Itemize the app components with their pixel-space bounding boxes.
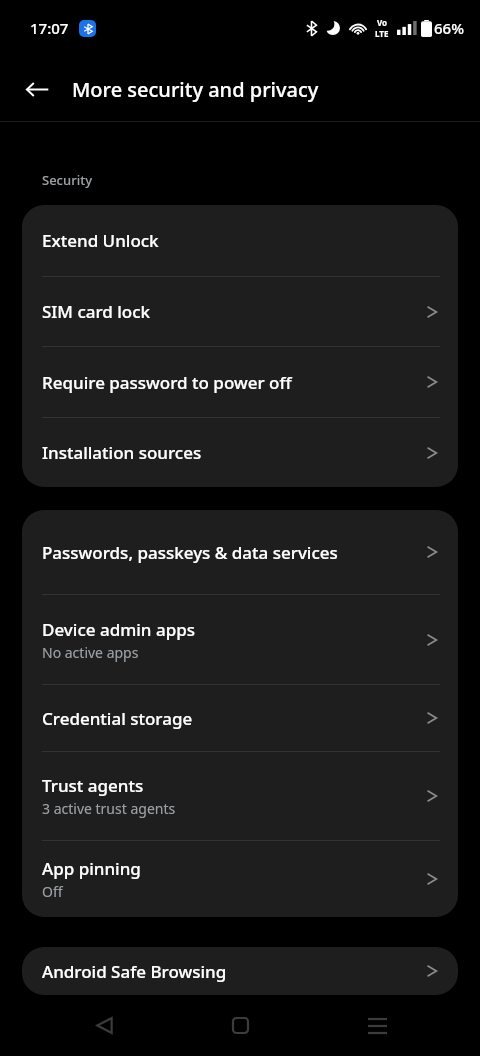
staticText: App pinning xyxy=(42,857,141,880)
staticText: Android Safe Browsing xyxy=(42,960,227,983)
staticText: Require password to power off xyxy=(42,371,292,394)
staticText: Extend Unlock xyxy=(42,229,159,252)
button[interactable]: Trust agents xyxy=(22,752,458,840)
staticText: Device admin apps xyxy=(42,618,196,641)
button[interactable]: Require password to power off xyxy=(22,347,458,417)
staticText: Vo xyxy=(377,17,388,28)
staticText: Credential storage xyxy=(42,707,193,730)
button[interactable]: Home xyxy=(207,995,273,1056)
button[interactable]: Recent apps xyxy=(344,995,410,1056)
staticText: Passwords, passkeys & data services xyxy=(42,541,338,564)
staticText: SIM card lock xyxy=(42,300,151,323)
staticText: 66% xyxy=(434,18,464,38)
staticText: More security and privacy xyxy=(72,76,319,103)
button[interactable]: Navigate up xyxy=(12,64,62,114)
staticText: Trust agents xyxy=(42,774,144,797)
staticText: LTE xyxy=(375,28,389,39)
button[interactable]: Android Safe Browsing xyxy=(22,947,458,995)
staticText: 3 active trust agents xyxy=(42,799,176,818)
staticText: Off xyxy=(42,882,63,901)
button[interactable]: Installation sources xyxy=(22,418,458,487)
button[interactable]: Credential storage xyxy=(22,685,458,751)
staticText: Installation sources xyxy=(42,441,202,464)
button[interactable]: SIM card lock xyxy=(22,277,458,346)
staticText: Security xyxy=(42,171,92,189)
button[interactable]: Extend Unlock xyxy=(22,205,458,276)
button[interactable]: Device admin apps xyxy=(22,595,458,684)
staticText: 17:07 xyxy=(30,18,69,38)
button[interactable]: Back xyxy=(71,995,137,1056)
button[interactable]: Passwords, passkeys & data services xyxy=(22,510,458,594)
staticText: No active apps xyxy=(42,643,139,662)
button[interactable]: App pinning xyxy=(22,841,458,917)
